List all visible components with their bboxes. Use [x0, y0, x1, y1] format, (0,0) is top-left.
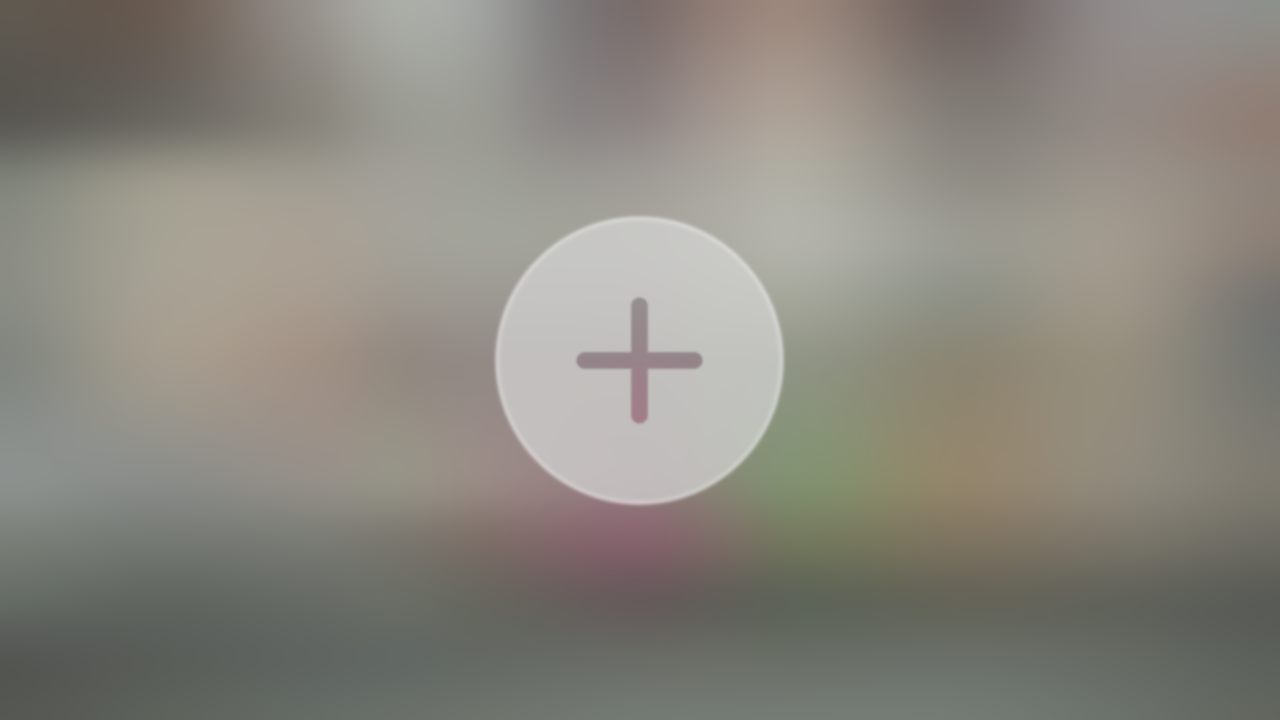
button[interactable]: Add [496, 216, 785, 505]
